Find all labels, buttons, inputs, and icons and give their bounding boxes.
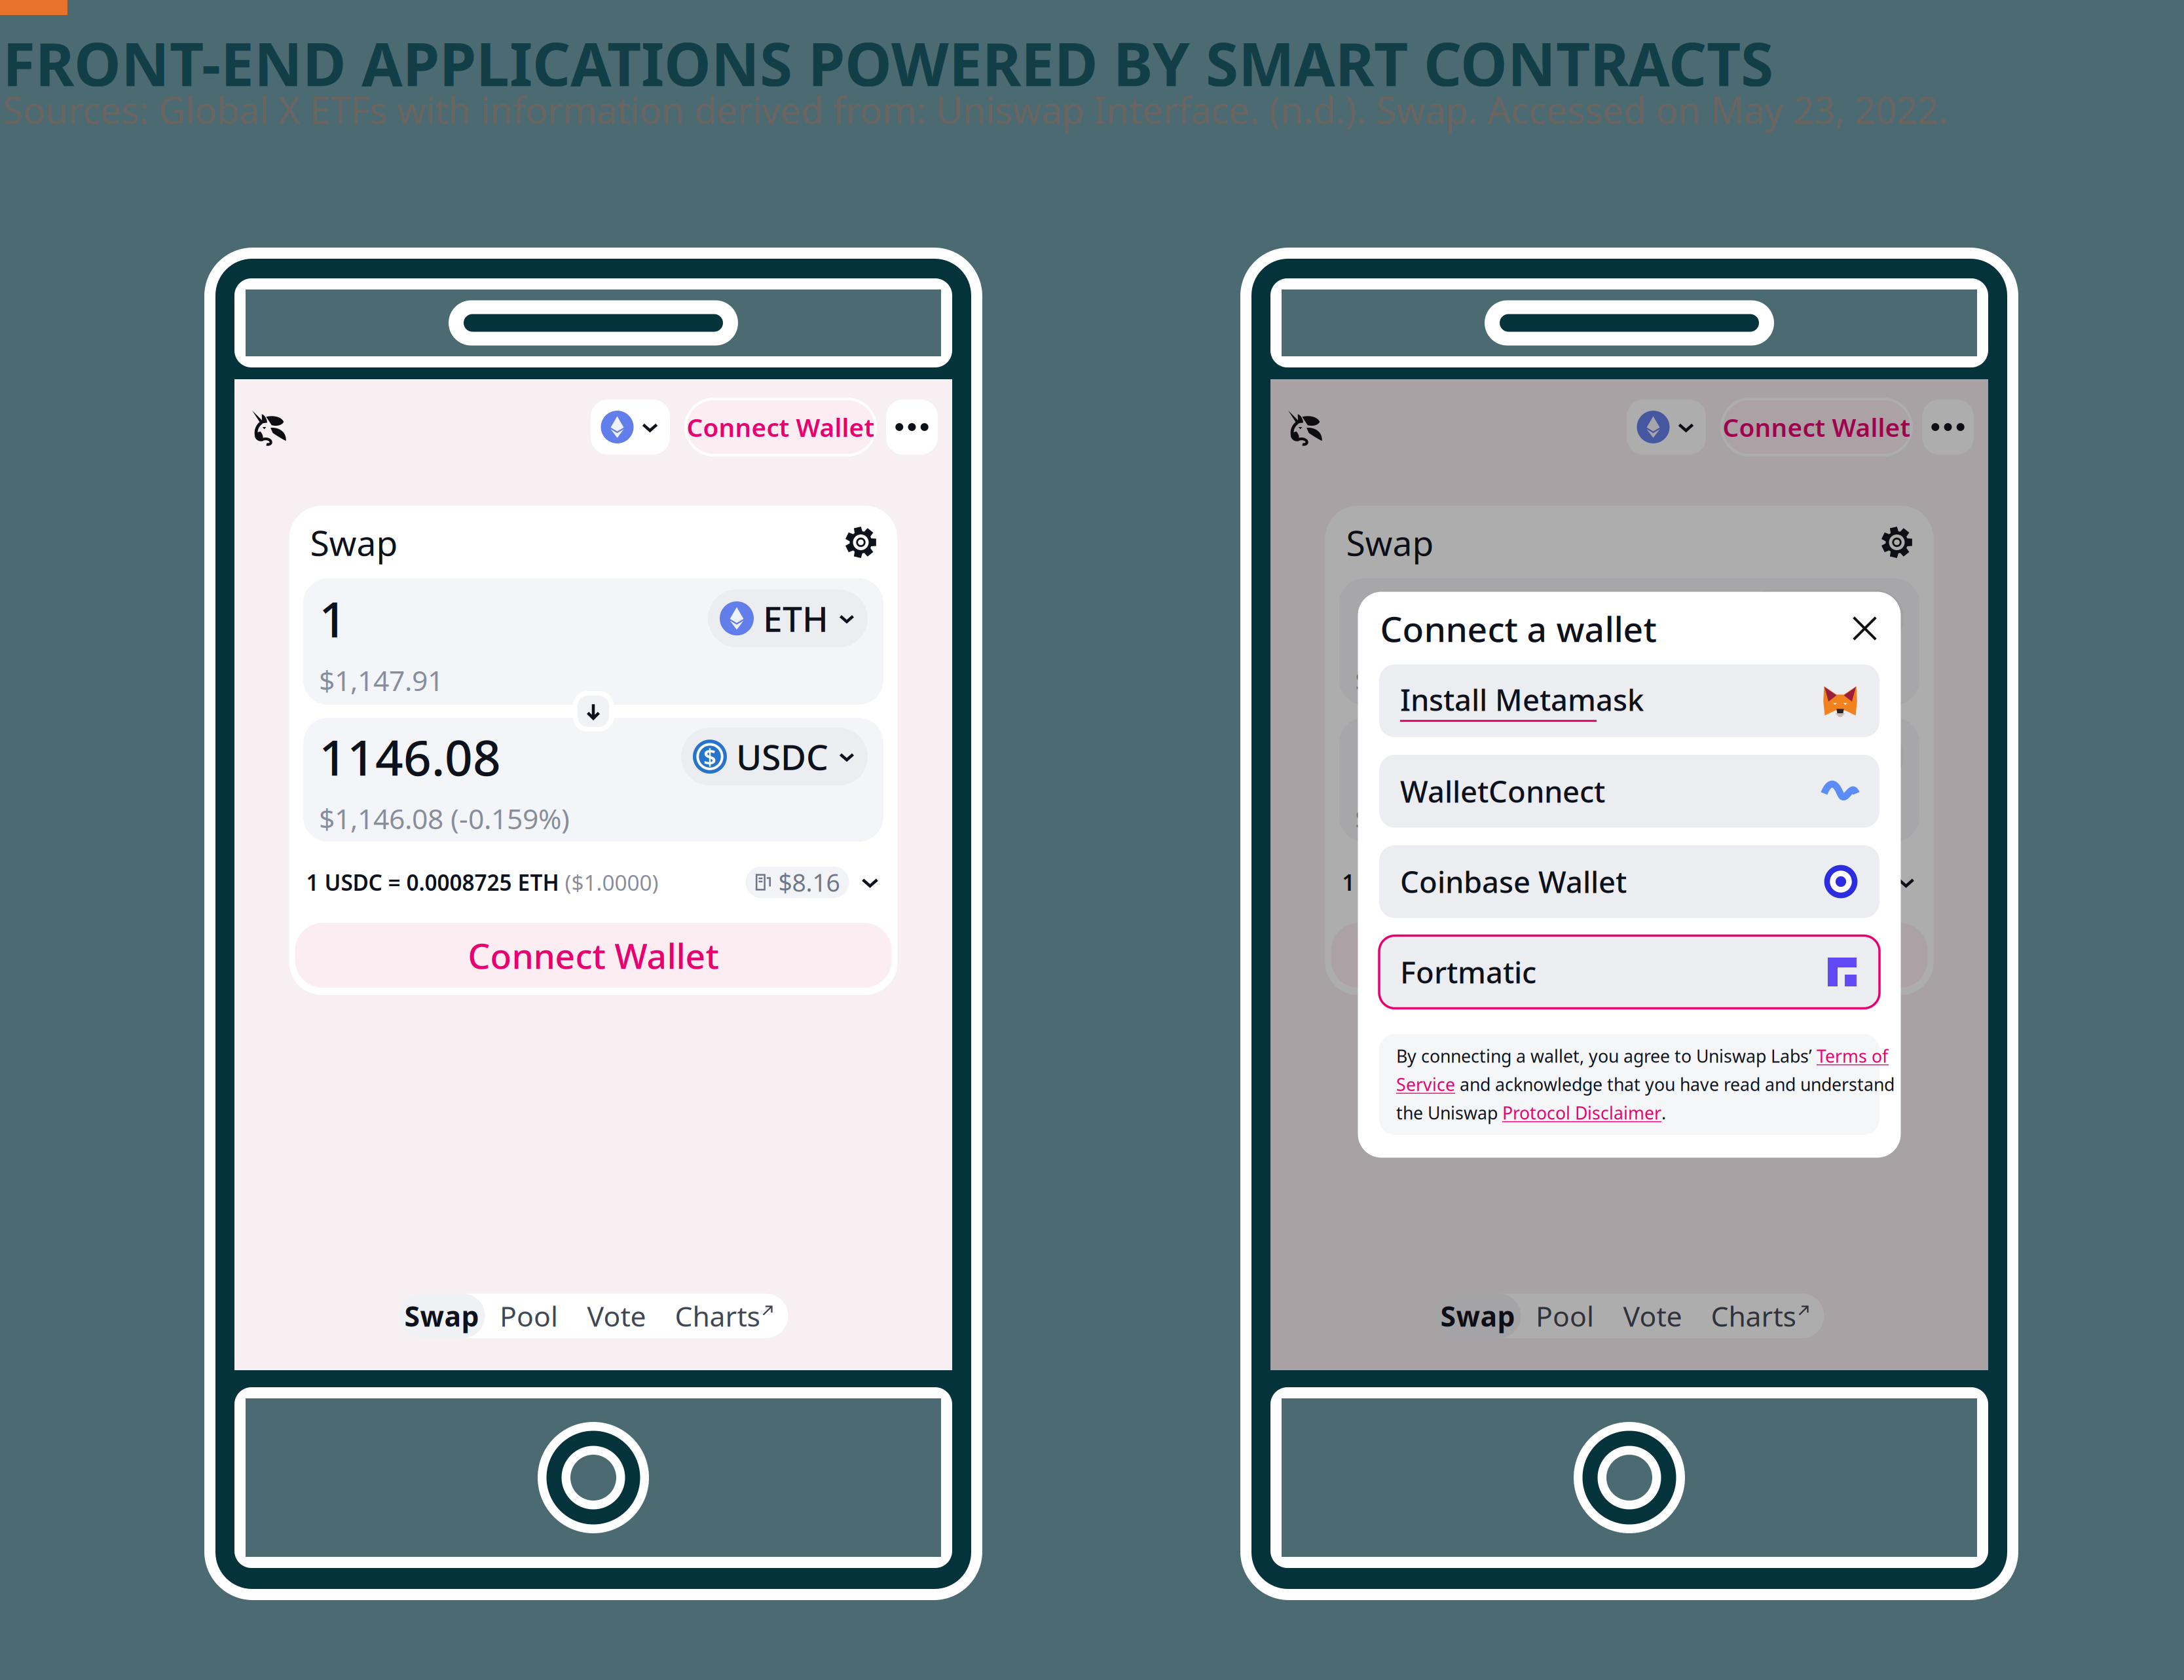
staticText: Service <box>1396 1073 1455 1096</box>
staticText: $1,147.91 <box>319 662 443 699</box>
button[interactable]: More <box>886 400 938 455</box>
button[interactable]: Close <box>1851 615 1879 642</box>
staticText: Sources: Global X ETFs with information … <box>3 85 1948 134</box>
staticText: ETH <box>763 595 828 642</box>
staticText: Fortmatic <box>1400 952 1536 992</box>
button[interactable]: Select network <box>591 400 670 455</box>
staticText: ETH <box>1799 595 1864 642</box>
button[interactable]: Swap direction <box>1609 691 1650 732</box>
staticText: Connect Wallet <box>687 410 875 444</box>
staticText: Pool <box>1536 1297 1594 1334</box>
staticText: USDC <box>736 733 828 780</box>
staticText: 1 USDC = 0.0008725 ETH <box>306 868 559 897</box>
button[interactable]: Fortmatic <box>1379 936 1879 1008</box>
staticText: Connect a wallet <box>1380 605 1657 652</box>
button[interactable]: Connect Wallet <box>684 398 877 457</box>
staticText: $ <box>703 742 716 772</box>
button[interactable]: Connect Wallet <box>1720 398 1913 457</box>
button[interactable]: Pool <box>485 1294 573 1338</box>
staticText: Swap <box>1346 519 1434 566</box>
button[interactable]: Swap <box>398 1294 485 1338</box>
staticText: Terms of <box>1817 1044 1888 1067</box>
staticText: $8.16 <box>778 866 840 898</box>
button[interactable]: Connect Wallet <box>295 923 892 988</box>
button[interactable]: Uniswap home <box>249 400 291 455</box>
button[interactable]: Settings <box>1881 527 1913 558</box>
staticText: and acknowledge that you have read and u… <box>1455 1073 1895 1096</box>
button[interactable]: Install Metamask <box>1379 664 1879 737</box>
staticText: WalletConnect <box>1400 771 1605 811</box>
button[interactable]: Charts <box>1696 1294 1824 1338</box>
staticText: Swap <box>1440 1297 1515 1334</box>
staticText: Vote <box>587 1297 646 1334</box>
staticText: $8.16 <box>1814 866 1876 898</box>
staticText: Coinbase Wallet <box>1400 862 1627 901</box>
staticText: By connecting a wallet, you agree to Uni… <box>1396 1044 1817 1067</box>
staticText: Connect Wallet <box>468 932 719 978</box>
button[interactable]: Swap <box>1434 1294 1521 1338</box>
staticText: . <box>1661 1101 1666 1124</box>
button[interactable]: Swap direction <box>573 691 614 732</box>
button[interactable]: Settings <box>845 527 877 558</box>
staticText: 1146.08 <box>1355 724 1537 789</box>
button[interactable]: ETH <box>1744 590 1904 647</box>
staticText: USDC <box>1772 733 1864 780</box>
button[interactable]: Uniswap home <box>1285 400 1327 455</box>
staticText: Connect Wallet <box>1504 932 1755 978</box>
staticText: $ <box>1739 742 1752 772</box>
button[interactable]: Vote <box>1609 1294 1696 1338</box>
staticText: $1,147.91 <box>1355 662 1479 699</box>
button[interactable]: $ <box>681 728 868 785</box>
staticText: Install Metamask <box>1400 680 1644 719</box>
button[interactable]: More <box>1922 400 1974 455</box>
staticText: the Uniswap <box>1396 1101 1502 1124</box>
staticText: Charts <box>675 1297 760 1334</box>
staticText: 1 <box>319 586 347 651</box>
button[interactable]: Charts <box>660 1294 788 1338</box>
staticText: Pool <box>500 1297 558 1334</box>
button[interactable]: Connect Wallet <box>1331 923 1928 988</box>
staticText: ($1.0000) <box>559 868 658 897</box>
staticText: 1146.08 <box>319 724 501 789</box>
button[interactable]: ETH <box>708 590 868 647</box>
staticText: FRONT-END APPLICATIONS POWERED BY SMART … <box>3 24 1773 102</box>
staticText: ($1.0000) <box>1595 868 1694 897</box>
staticText: $1,146.08 (-0.159%) <box>319 800 570 837</box>
button[interactable]: $ <box>1717 728 1904 785</box>
button[interactable]: Pool <box>1521 1294 1609 1338</box>
staticText: Connect Wallet <box>1723 410 1911 444</box>
staticText: Charts <box>1711 1297 1796 1334</box>
button[interactable]: WalletConnect <box>1379 755 1879 828</box>
staticText: Swap <box>404 1297 479 1334</box>
staticText: Vote <box>1623 1297 1682 1334</box>
staticText: Protocol Disclaimer <box>1502 1101 1661 1124</box>
staticText: 1 <box>1355 586 1383 651</box>
button[interactable]: Coinbase Wallet <box>1379 845 1879 918</box>
staticText: Swap <box>310 519 398 566</box>
staticText: $1,146.08 (-0.159%) <box>1355 800 1606 837</box>
button[interactable]: Select network <box>1627 400 1706 455</box>
button[interactable]: Vote <box>573 1294 660 1338</box>
staticText: 1 USDC = 0.0008725 ETH <box>1342 868 1595 897</box>
